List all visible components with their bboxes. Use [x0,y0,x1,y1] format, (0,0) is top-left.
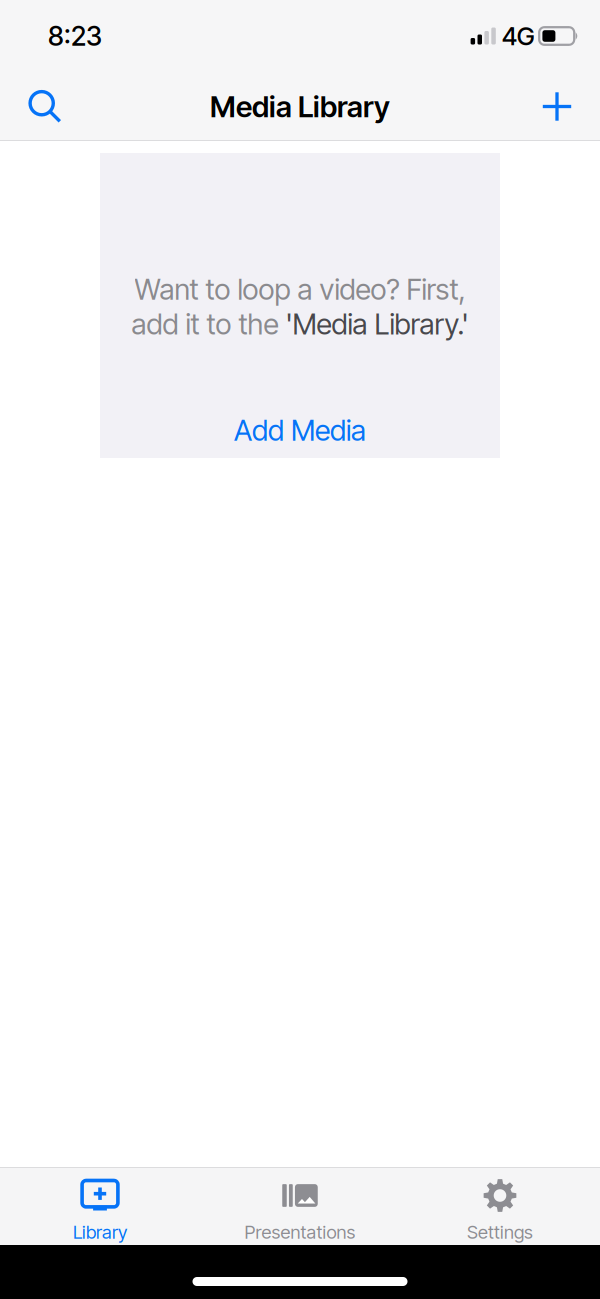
staticText: add it to the [131,307,285,341]
staticText: Add Media [234,413,366,448]
staticText: Media Library [210,89,390,124]
staticText: Library [73,1221,127,1243]
staticText: 8:23 [48,20,102,52]
staticText: 4G [502,21,535,51]
staticText: Settings [467,1221,533,1243]
staticText: Presentations [244,1221,355,1243]
button[interactable]: Add media [529,78,585,134]
button[interactable]: Settings [400,1167,600,1245]
button[interactable]: Search [17,78,73,134]
button[interactable]: Presentations [200,1167,400,1245]
staticText: Want to loop a video? First, [134,272,465,307]
button[interactable]: Add Media [100,413,500,447]
staticText: 'Media Library.' [285,307,468,341]
button[interactable]: Library [0,1167,200,1245]
